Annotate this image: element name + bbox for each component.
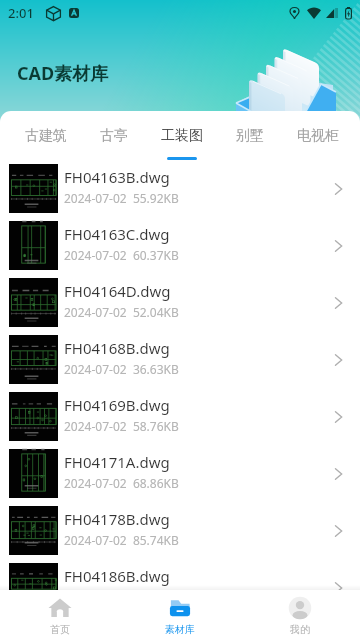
staticText: 电视柜 xyxy=(297,127,339,145)
staticText: FH04163B.dwg xyxy=(64,167,170,187)
staticText: 2024-07-02 68.86KB xyxy=(64,475,179,491)
button[interactable]: FH04186B.dwg xyxy=(0,559,360,616)
button[interactable]: 我的 xyxy=(240,590,360,641)
button[interactable]: 首页 xyxy=(0,590,120,641)
staticText: 别墅 xyxy=(236,127,264,145)
button[interactable]: 别墅 xyxy=(236,111,297,157)
staticText: 2024-07-02 58.76KB xyxy=(64,418,179,434)
staticText: 首页 xyxy=(50,623,70,636)
staticText: FH04178B.dwg xyxy=(64,509,170,529)
button[interactable]: FH04168B.dwg xyxy=(0,331,360,388)
staticText: FH04163C.dwg xyxy=(64,224,170,244)
staticText: 古亭 xyxy=(100,127,128,145)
button[interactable]: 古亭 xyxy=(100,111,161,157)
button[interactable]: FH04164D.dwg xyxy=(0,274,360,331)
button[interactable]: FH04169B.dwg xyxy=(0,388,360,445)
staticText: 2:01 xyxy=(8,4,34,22)
button[interactable]: FH04178B.dwg xyxy=(0,502,360,559)
staticText: 2024-07-02 85.74KB xyxy=(64,532,179,548)
button[interactable]: 素材库 xyxy=(120,590,240,641)
button[interactable]: FH04171A.dwg xyxy=(0,445,360,502)
staticText: 2024-07-02 52.04KB xyxy=(64,304,179,320)
staticText: FH04164D.dwg xyxy=(64,281,171,301)
staticText: CAD素材库 xyxy=(17,61,109,86)
staticText: FH04171A.dwg xyxy=(64,452,170,472)
staticText: 2024-07-02 36.63KB xyxy=(64,361,179,377)
staticText: 工装图 xyxy=(161,127,203,145)
staticText: FH04169B.dwg xyxy=(64,395,170,415)
staticText: 2024-07-02 44.10KB xyxy=(64,589,179,605)
staticText: 2024-07-02 55.92KB xyxy=(64,190,179,206)
staticText: 我的 xyxy=(290,623,310,636)
staticText: 2024-07-02 60.37KB xyxy=(64,247,179,263)
button[interactable]: FH04163C.dwg xyxy=(0,217,360,274)
button[interactable]: 电视柜 xyxy=(297,111,339,157)
staticText: FH04186B.dwg xyxy=(64,566,170,586)
staticText: FH04168B.dwg xyxy=(64,338,170,358)
staticText: 古建筑 xyxy=(25,127,67,145)
button[interactable]: 古建筑 xyxy=(25,111,100,157)
button[interactable]: FH04163B.dwg xyxy=(0,160,360,217)
button[interactable]: 工装图 xyxy=(161,111,236,160)
staticText: 素材库 xyxy=(165,623,195,636)
